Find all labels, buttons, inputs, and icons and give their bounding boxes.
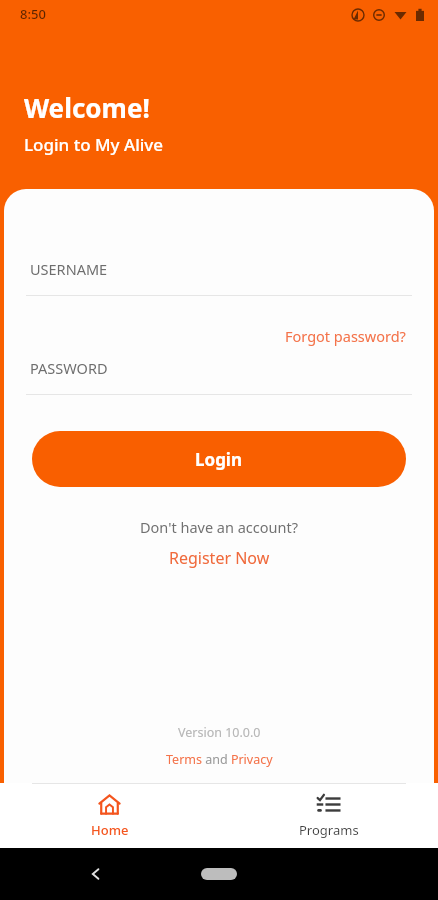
staticText: 8:50	[20, 5, 46, 23]
staticText: Version 10.0.0	[178, 724, 261, 741]
staticText: Programs	[299, 821, 359, 839]
staticText: Don't have an account?	[140, 517, 298, 537]
button[interactable]: Forgot password?	[283, 324, 408, 348]
staticText: Terms and Privacy	[166, 751, 273, 768]
other: Home	[201, 868, 237, 880]
button[interactable]: Programs	[219, 784, 438, 848]
staticText: Welcome!	[24, 90, 150, 125]
staticText: Register Now	[169, 547, 270, 569]
staticText: USERNAME	[30, 259, 108, 279]
button[interactable]: Terms and Privacy	[165, 750, 274, 769]
staticText: Login to My Alive	[24, 133, 164, 156]
staticText: Home	[91, 821, 129, 839]
button[interactable]: Register Now	[167, 545, 272, 571]
button[interactable]: Home	[0, 784, 219, 848]
button[interactable]: Login	[32, 431, 406, 487]
staticText: Login	[195, 448, 243, 471]
other: Back	[88, 866, 104, 882]
staticText: Forgot password?	[285, 326, 406, 346]
other: Programs	[317, 793, 340, 816]
other: Home	[98, 793, 121, 816]
staticText: PASSWORD	[30, 358, 108, 378]
